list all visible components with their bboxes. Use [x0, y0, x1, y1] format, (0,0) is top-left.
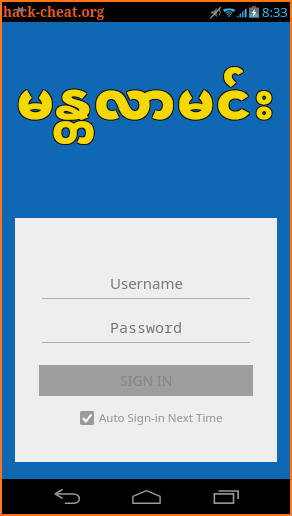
staticText: Username — [110, 273, 183, 293]
staticText: မန္တလာမင်း — [16, 49, 276, 163]
button[interactable]: SIGN IN — [39, 365, 253, 396]
button[interactable]: Password — [42, 317, 250, 343]
staticText: မန္တလာမင်း — [17, 49, 277, 163]
button[interactable]: Username — [42, 273, 250, 299]
staticText: မန္တလာမင်း — [15, 51, 275, 165]
staticText: SIGN IN — [120, 371, 173, 390]
staticText: မန္တလာမင်း — [16, 50, 276, 164]
staticText: 8:33 — [262, 3, 288, 21]
staticText: မန္တလာမင်း — [16, 51, 276, 165]
staticText: မန္တလာမင်း — [17, 51, 277, 165]
button[interactable]: Recents — [202, 479, 250, 514]
staticText: Auto Sign-in Next Time — [99, 410, 223, 426]
staticText: hack-cheat.org — [3, 3, 105, 21]
staticText: မန္တလာမင်း — [15, 50, 275, 164]
button[interactable]: Home — [122, 479, 170, 514]
button[interactable]: Auto Sign-in Next Time — [20, 410, 282, 426]
button[interactable]: Back — [43, 479, 91, 514]
staticText: Password — [110, 317, 183, 337]
staticText: မန္တလာမင်း — [17, 50, 277, 164]
staticText: မန္တလာမင်း — [15, 49, 275, 163]
